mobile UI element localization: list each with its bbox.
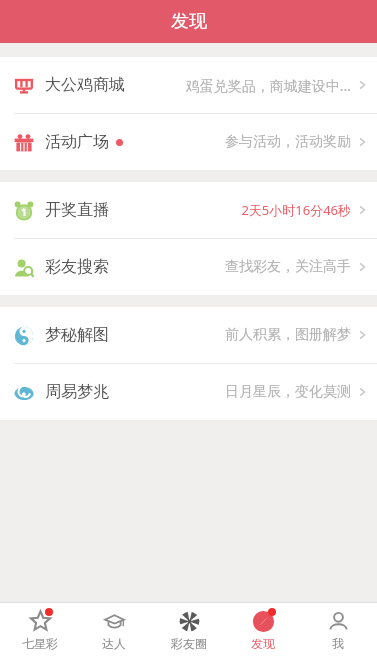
staticText: 彩友搜索 — [45, 257, 109, 277]
button[interactable]: 周易梦兆 — [0, 364, 377, 420]
button[interactable]: 达人 — [79, 603, 149, 656]
staticText: 发现 — [171, 10, 207, 33]
staticText: 达人 — [102, 636, 126, 651]
button[interactable]: 彩友圈 — [154, 603, 224, 656]
button[interactable]: 彩友搜索 — [0, 239, 377, 295]
staticText: 2天5小时16分46秒 — [241, 201, 351, 219]
staticText: 参与活动，活动奖励 — [225, 133, 351, 151]
staticText: 日月星辰，变化莫测 — [225, 383, 351, 401]
staticText: 彩友圈 — [171, 636, 207, 651]
button[interactable]: 梦秘解图 — [0, 307, 377, 363]
staticText: 我 — [332, 636, 344, 651]
staticText: 周易梦兆 — [45, 382, 109, 402]
staticText: 发现 — [251, 636, 275, 651]
staticText: 鸡蛋兑奖品，商城建设中... — [185, 76, 351, 95]
button[interactable]: 我 — [303, 603, 373, 656]
staticText: 七星彩 — [22, 636, 58, 651]
button[interactable]: 活动广场 — [0, 114, 377, 170]
button[interactable]: 开奖直播 — [0, 182, 377, 238]
staticText: 活动广场 — [45, 132, 109, 152]
staticText: 开奖直播 — [45, 200, 109, 220]
staticText: 查找彩友，关注高手 — [225, 258, 351, 276]
staticText: 大公鸡商城 — [45, 75, 125, 95]
button[interactable]: 七星彩 — [5, 603, 75, 656]
button[interactable]: 大公鸡商城 — [0, 57, 377, 113]
staticText: 梦秘解图 — [45, 325, 109, 345]
staticText: 前人积累，图册解梦 — [225, 326, 351, 344]
button[interactable]: 发现 — [228, 603, 298, 656]
